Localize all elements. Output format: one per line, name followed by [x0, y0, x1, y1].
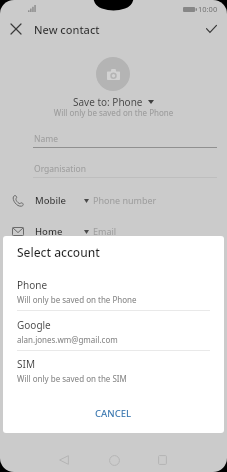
staticText: Organisation — [34, 163, 87, 175]
button[interactable]: SIM — [3, 351, 224, 387]
staticText: Email — [93, 225, 117, 237]
button[interactable]: Mobile — [0, 193, 227, 209]
button[interactable]: Save to: Phone — [0, 95, 227, 108]
button[interactable]: Close — [6, 19, 26, 39]
staticText: Mobile — [35, 194, 66, 207]
staticText: 10:00 — [198, 4, 218, 14]
staticText: Will only be saved on the Phone — [17, 294, 137, 305]
staticText: CANCEL — [95, 407, 132, 420]
staticText: Will only be saved on the SIM — [17, 373, 127, 384]
staticText: SIM — [17, 357, 35, 371]
button[interactable]: Organisation — [0, 162, 227, 176]
button[interactable]: Name — [0, 132, 227, 146]
staticText: Phone number — [93, 194, 157, 206]
button[interactable]: Add photo — [96, 57, 130, 91]
button[interactable]: Home — [0, 224, 227, 240]
button[interactable]: Phone — [3, 272, 224, 308]
staticText: Will only be saved on the Phone — [0, 107, 227, 118]
staticText: Select account — [17, 244, 100, 260]
button[interactable]: Home — [104, 450, 124, 470]
staticText: Phone — [17, 278, 48, 292]
staticText: Name — [34, 133, 58, 145]
button[interactable]: Save — [201, 19, 221, 39]
staticText: Google — [17, 318, 51, 332]
staticText: Home — [35, 225, 63, 238]
button[interactable]: Back — [54, 450, 74, 470]
staticText: alan.jones.wm@gmail.com — [17, 334, 118, 345]
staticText: New contact — [34, 22, 100, 37]
button[interactable]: CANCEL — [88, 404, 138, 422]
button[interactable]: Google — [3, 312, 224, 348]
staticText: Save to: Phone — [73, 95, 143, 108]
button[interactable]: Recents — [152, 450, 172, 470]
